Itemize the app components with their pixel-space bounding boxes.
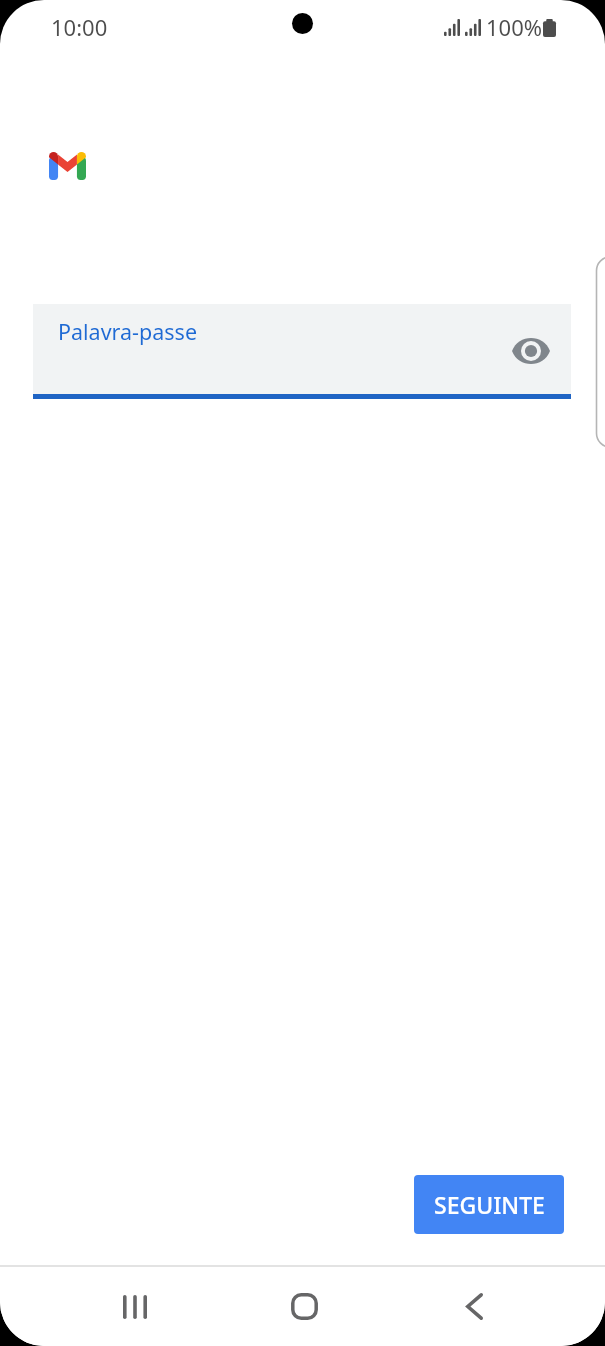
button[interactable]: Voltar — [434, 1267, 514, 1346]
staticText: 10:00 — [51, 12, 108, 42]
button[interactable]: SEGUINTE — [414, 1175, 564, 1234]
button[interactable]: Palavra-passe — [33, 304, 571, 399]
staticText: SEGUINTE — [434, 1189, 545, 1220]
button[interactable]: Início — [264, 1267, 344, 1346]
staticText: Palavra-passe — [58, 317, 198, 346]
button[interactable]: Recentes — [95, 1267, 175, 1346]
staticText: 100% — [486, 12, 543, 42]
button[interactable]: Mostrar palavra-passe — [499, 325, 563, 377]
